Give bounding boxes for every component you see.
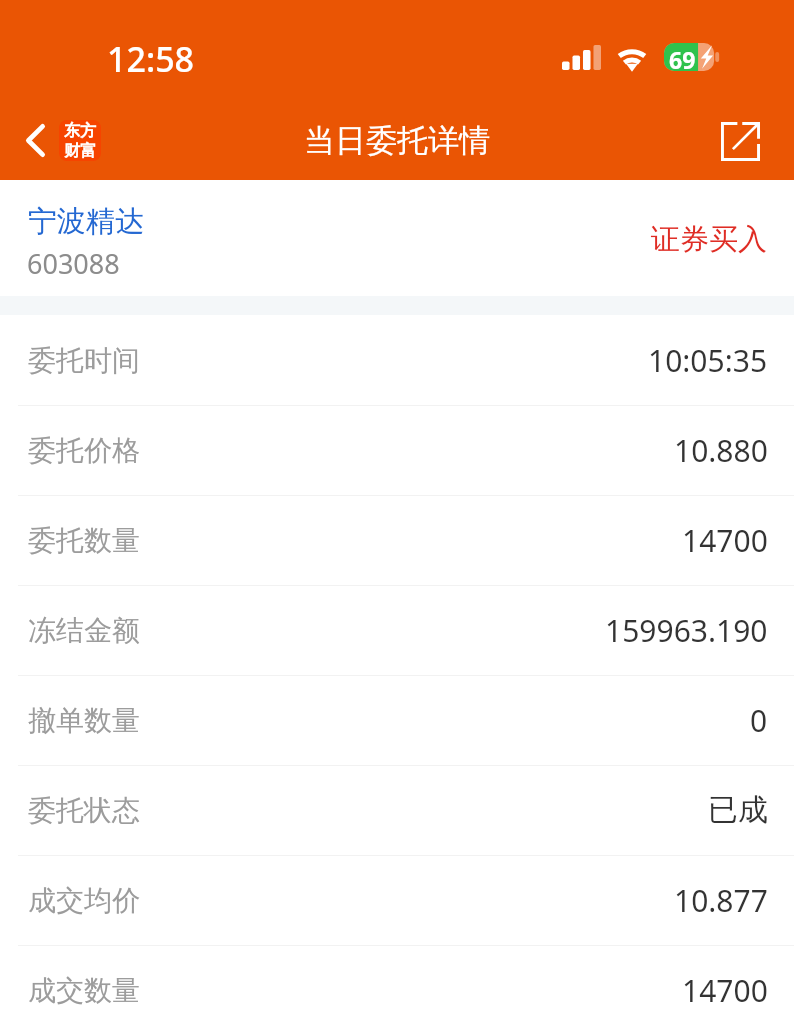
staticText: 证券买入 bbox=[651, 221, 767, 258]
staticText: 宁波精达 bbox=[28, 203, 144, 240]
staticText: 12:58 bbox=[107, 36, 195, 82]
staticText: 委托状态 bbox=[28, 793, 140, 828]
staticText: 159963.190 bbox=[605, 610, 768, 651]
staticText: 东方 bbox=[64, 121, 96, 141]
button[interactable]: 冻结金额 bbox=[0, 585, 794, 675]
staticText: 当日委托详情 bbox=[304, 121, 490, 160]
staticText: 撤单数量 bbox=[28, 703, 140, 738]
staticText: 10.880 bbox=[674, 430, 768, 471]
button[interactable]: 委托时间 bbox=[0, 315, 794, 405]
staticText: 冻结金额 bbox=[28, 613, 140, 648]
button[interactable]: 宁波精达 bbox=[0, 180, 794, 296]
staticText: 10.877 bbox=[674, 880, 768, 921]
button[interactable]: 撤单数量 bbox=[0, 675, 794, 765]
staticText: 财富 bbox=[64, 141, 96, 161]
button[interactable]: 成交均价 bbox=[0, 855, 794, 945]
button[interactable]: Share bbox=[712, 113, 769, 170]
button[interactable]: 委托状态 bbox=[0, 765, 794, 855]
staticText: 14700 bbox=[682, 520, 768, 561]
staticText: 成交均价 bbox=[28, 883, 140, 918]
button[interactable]: 委托数量 bbox=[0, 495, 794, 585]
staticText: 已成 bbox=[708, 791, 768, 829]
button[interactable]: 成交数量 bbox=[0, 945, 794, 1024]
staticText: 委托价格 bbox=[28, 433, 140, 468]
staticText: 69 bbox=[669, 44, 696, 72]
staticText: 委托数量 bbox=[28, 523, 140, 558]
staticText: 603088 bbox=[27, 245, 120, 282]
staticText: 成交数量 bbox=[28, 973, 140, 1008]
button[interactable]: 委托价格 bbox=[0, 405, 794, 495]
staticText: 10:05:35 bbox=[648, 340, 768, 381]
button[interactable]: Back bbox=[18, 114, 109, 167]
staticText: 14700 bbox=[682, 970, 768, 1011]
staticText: 0 bbox=[750, 700, 768, 741]
staticText: 委托时间 bbox=[28, 343, 140, 378]
